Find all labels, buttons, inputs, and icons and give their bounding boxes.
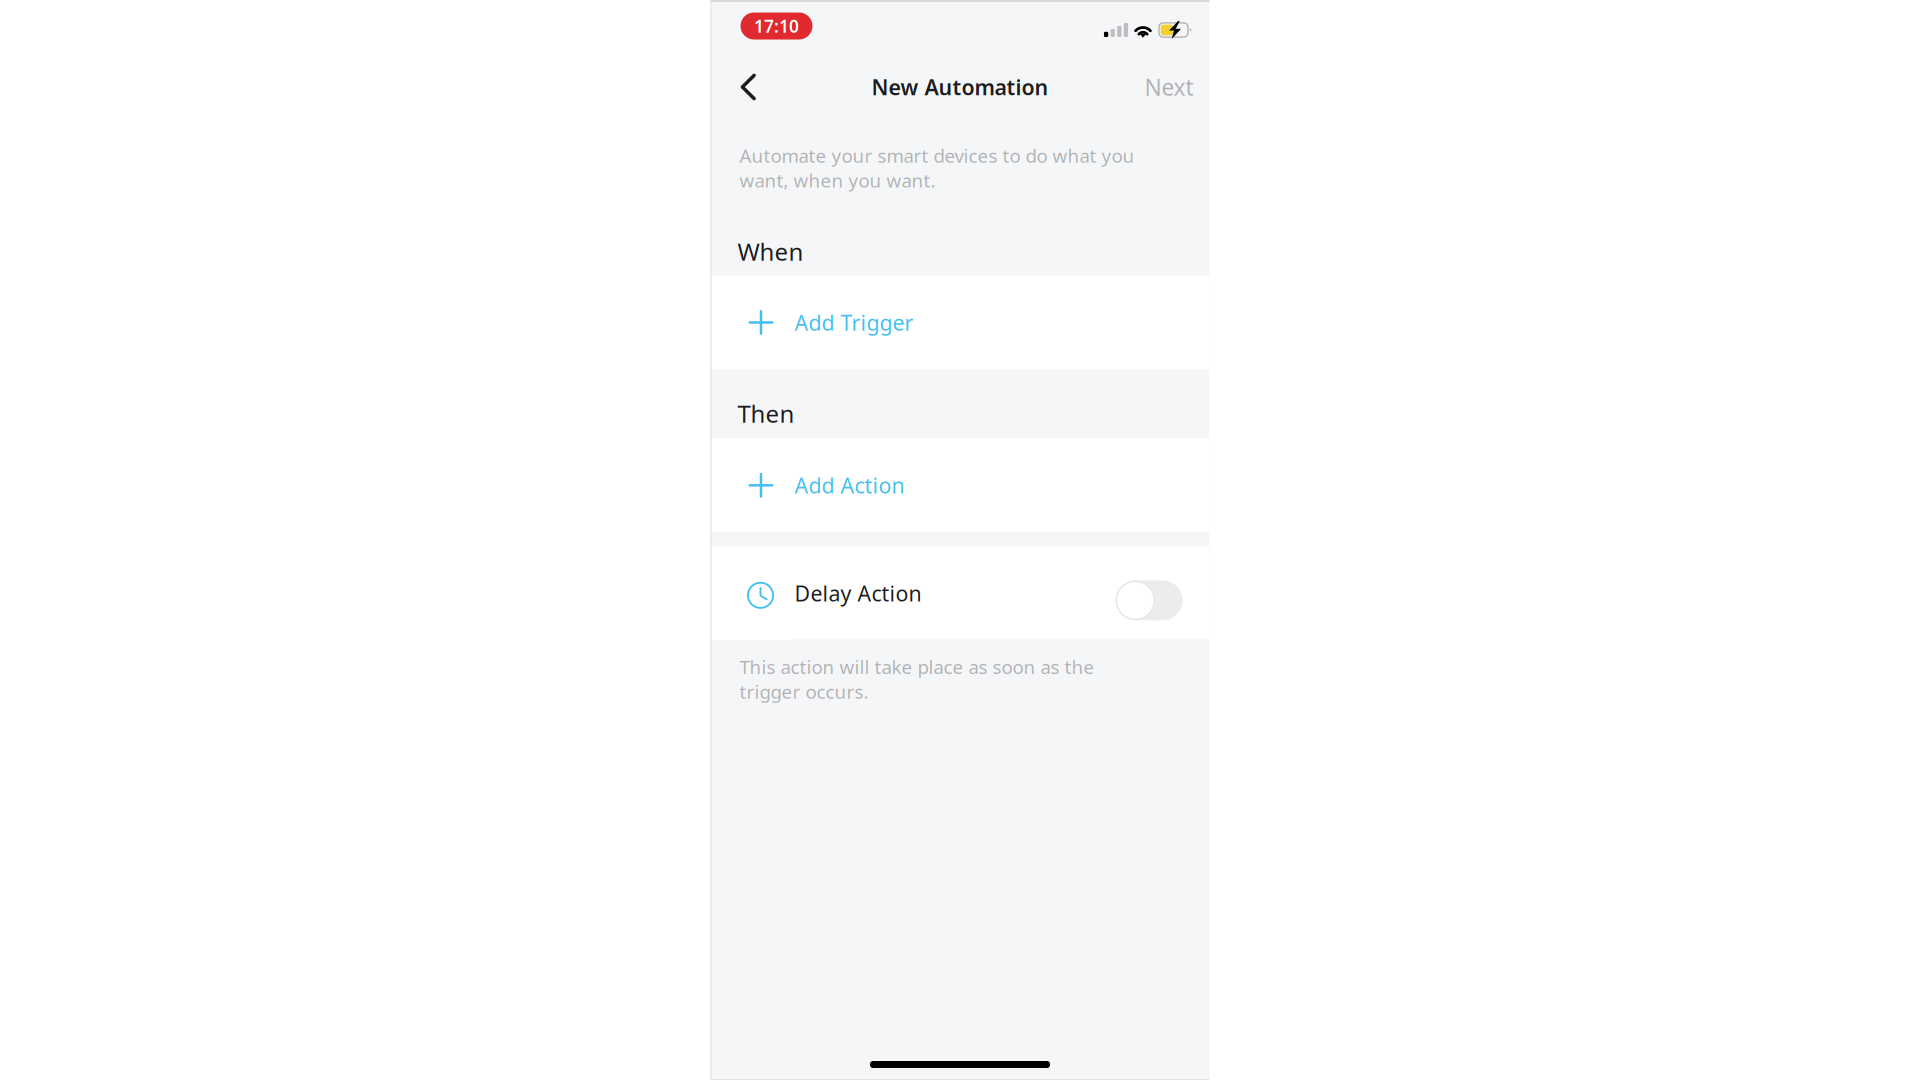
staticText: When: [737, 236, 803, 267]
staticText: New Automation: [871, 73, 1048, 101]
staticText: Delay Action: [794, 579, 921, 607]
button[interactable]: Next: [1144, 63, 1209, 107]
button[interactable]: Back: [710, 63, 786, 107]
staticText: 17:10: [754, 14, 799, 37]
button[interactable]: Add Action: [710, 438, 1209, 532]
button[interactable]: Delay Action: [710, 546, 1209, 640]
button[interactable]: Add Trigger: [710, 275, 1209, 369]
staticText: Automate your smart devices to do what y…: [739, 143, 1134, 193]
staticText: Add Action: [794, 471, 904, 499]
staticText: Add Trigger: [794, 308, 913, 337]
staticText: This action will take place as soon as t…: [739, 654, 1094, 704]
staticText: Then: [737, 397, 794, 429]
staticText: Next: [1144, 72, 1193, 102]
